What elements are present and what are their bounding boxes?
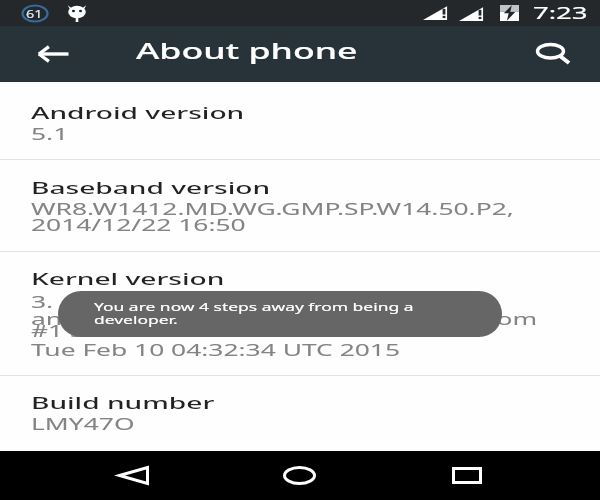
staticText: 2014/12/22 16:50 [31,214,246,236]
button[interactable]: Build number [0,376,600,451]
staticText: #1 SMP PREEMPT [31,320,248,342]
staticText: You are now 4 steps away from being a [94,299,414,314]
staticText: 61 [26,6,43,21]
staticText: Tue Feb 10 04:32:34 UTC 2015 [31,339,401,361]
button[interactable]: Recent apps [400,451,533,500]
staticText: Android version [31,102,245,124]
staticText: LMY47O [31,413,135,435]
button[interactable]: Home [233,451,366,500]
staticText: 5.1 [31,123,68,145]
button[interactable]: Search [526,30,582,78]
staticText: Build number [31,392,214,414]
button[interactable]: Android version [0,82,600,159]
staticText: WR8.W1412.MD.WG.GMP.SP.W14.50.P2, [31,198,515,220]
staticText: About phone [136,35,358,65]
button[interactable]: Back [67,451,200,500]
staticText: android-build@vpbq1.mtv.corp.gole.com [31,308,538,330]
staticText: Baseband version [31,177,271,199]
button[interactable]: Kernel version [0,252,600,375]
staticText: developer. [94,312,178,327]
staticText: Kernel version [31,268,225,290]
button[interactable]: Back [22,30,84,78]
staticText: 7:23 [533,2,588,24]
button[interactable]: Baseband version [0,160,600,251]
staticText: 3. [31,291,54,313]
